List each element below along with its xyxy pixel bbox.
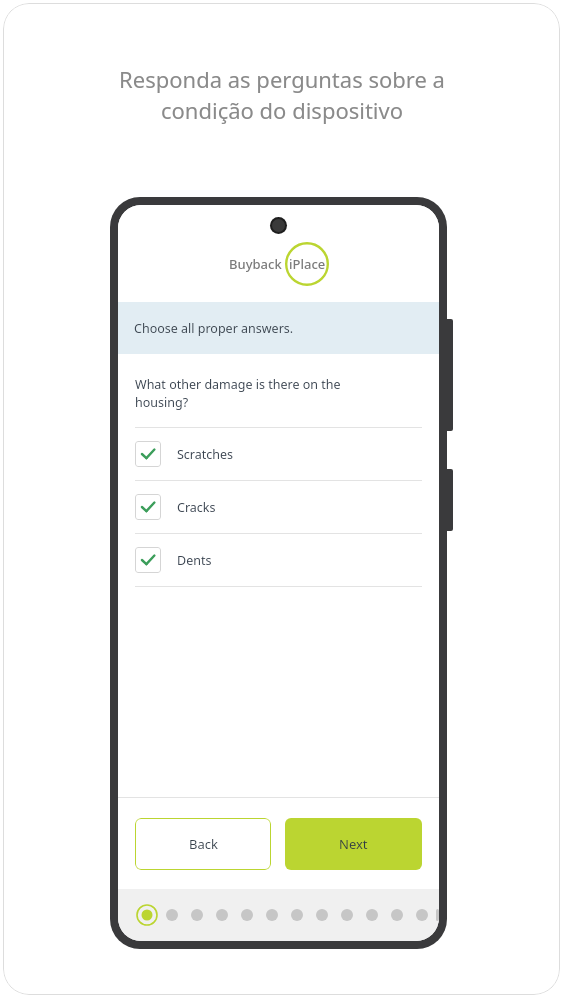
staticText: Cracks — [177, 499, 216, 516]
staticText: Back — [189, 835, 218, 853]
button[interactable]: Step 9 — [336, 904, 358, 926]
staticText: Choose all proper answers. — [134, 320, 294, 337]
staticText: Scratches — [177, 446, 234, 463]
staticText: iPlace — [289, 255, 326, 273]
button[interactable]: Step 5 — [236, 904, 258, 926]
staticText: What other damage is there on the housin… — [135, 376, 341, 411]
button[interactable]: Dents — [118, 534, 439, 586]
button[interactable]: Step 4 — [211, 904, 233, 926]
button[interactable]: Cracks — [118, 481, 439, 533]
button[interactable]: Step 13 — [436, 904, 439, 926]
staticText: Buyback — [229, 255, 282, 273]
button[interactable]: Next — [285, 818, 422, 870]
button[interactable]: Step 1 of 14 — [136, 904, 158, 926]
button[interactable]: Step 10 — [361, 904, 383, 926]
button[interactable]: Back — [135, 818, 271, 870]
button[interactable]: Step 3 — [186, 904, 208, 926]
button[interactable]: Step 2 — [161, 904, 183, 926]
button[interactable]: Scratches — [118, 428, 439, 480]
button[interactable]: Step 8 — [311, 904, 333, 926]
button[interactable]: Step 11 — [386, 904, 408, 926]
staticText: Responda as perguntas sobre a condição d… — [119, 64, 445, 126]
staticText: Next — [339, 835, 368, 853]
button[interactable]: Step 6 — [261, 904, 283, 926]
button[interactable]: Step 7 — [286, 904, 308, 926]
button[interactable]: Step 12 — [411, 904, 433, 926]
staticText: Dents — [177, 552, 212, 569]
